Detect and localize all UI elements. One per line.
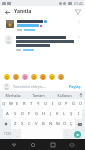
button[interactable]: V [33,119,40,129]
staticText: Kullanıcı [57,93,72,98]
button[interactable]: Q [1,99,7,109]
button[interactable]: Emoji 7 [57,73,64,80]
staticText: T [30,101,33,107]
button[interactable]: ?123 [1,129,14,139]
button[interactable]: C [26,119,33,129]
staticText: U [44,101,48,107]
button[interactable]: A [3,109,11,119]
staticText: F [28,111,31,117]
button[interactable]: W [7,99,14,109]
staticText: Ğ [72,101,76,107]
staticText: J [50,111,52,117]
staticText: Yanıtla [14,8,32,15]
button[interactable]: Recent apps [47,139,58,150]
staticText: M [56,121,60,127]
staticText: N [49,121,53,127]
button[interactable]: Keyboard [66,139,77,150]
staticText: Ç [70,121,73,127]
button[interactable]: Comma [14,129,21,139]
staticText: S [14,111,17,117]
staticText: K [56,111,59,117]
button[interactable]: Emoji 5 [39,73,46,80]
staticText: H [42,111,46,117]
staticText: G [35,111,39,117]
button[interactable]: Ğ [70,99,77,109]
staticText: Paylaş [69,84,81,89]
button[interactable]: Back [3,8,11,16]
button[interactable]: More options [77,20,81,24]
button[interactable]: M [54,119,61,129]
staticText: A [6,111,9,117]
button[interactable]: Send [73,7,82,16]
button[interactable]: Emoji 1 [3,73,10,80]
button[interactable]: Tweetinizi ekleyin... [3,81,82,91]
button[interactable]: More options [77,35,81,39]
button[interactable]: T [28,99,35,109]
staticText: W [9,101,13,107]
staticText: Tamam [32,93,45,98]
staticText: Ö [63,121,67,127]
button[interactable]: Z [11,119,19,129]
staticText: Merhaba [5,93,21,98]
staticText: ?123 [4,132,11,136]
staticText: I [52,101,54,107]
button[interactable]: N [47,119,54,129]
button[interactable]: F [26,109,33,119]
button[interactable]: Kullanıcı [51,91,77,99]
button[interactable]: Y [35,99,42,109]
button[interactable]: O [56,99,63,109]
button[interactable]: Ü [77,99,84,109]
button[interactable]: Ç [68,119,75,129]
button[interactable]: R [21,99,28,109]
button[interactable]: I [49,99,56,109]
staticText: V [35,121,38,127]
button[interactable]: Tamam [25,91,51,99]
staticText: B [42,121,45,127]
button[interactable]: D [19,109,26,119]
button[interactable]: Shift [1,119,11,129]
button[interactable]: X [19,119,26,129]
button[interactable]: P [63,99,70,109]
staticText: , [17,132,19,137]
staticText: I [78,111,80,117]
button[interactable]: Back [8,139,19,150]
button[interactable]: Ö [61,119,68,129]
button[interactable]: U [42,99,49,109]
button[interactable]: L [61,109,68,119]
staticText: 21:42 [74,1,83,6]
button[interactable]: I [75,109,82,119]
button[interactable]: Emoji 6 [48,73,55,80]
staticText: Ü [79,101,83,107]
staticText: E [16,101,19,107]
staticText: L [63,111,66,117]
button[interactable]: Merhaba [0,91,25,99]
button[interactable]: H [40,109,47,119]
staticText: Y [37,101,40,107]
staticText: X [21,121,24,127]
staticText: D [21,111,25,117]
staticText: O [58,101,62,107]
button[interactable]: S [11,109,19,119]
button[interactable]: Voice input [77,91,85,99]
staticText: P [65,101,68,107]
staticText: Q [2,101,6,107]
staticText: Z [14,121,17,127]
button[interactable]: Home [27,139,38,150]
staticText: . [66,132,68,137]
button[interactable]: Emoji 4 [30,73,37,80]
button[interactable]: G [33,109,40,119]
button[interactable]: Paylaş [68,84,82,89]
button[interactable]: Emoji 3 [21,73,28,80]
button[interactable]: Enter [70,129,84,139]
staticText: C [28,121,31,127]
staticText: Tweetinizi ekleyin... [13,84,46,89]
button[interactable]: Emoji 2 [12,73,19,80]
button[interactable]: B [40,119,47,129]
button[interactable]: K [54,109,61,119]
button[interactable]: E [14,99,21,109]
button[interactable]: Backspace [75,119,84,129]
button[interactable]: J [47,109,54,119]
button[interactable]: Ş [68,109,75,119]
